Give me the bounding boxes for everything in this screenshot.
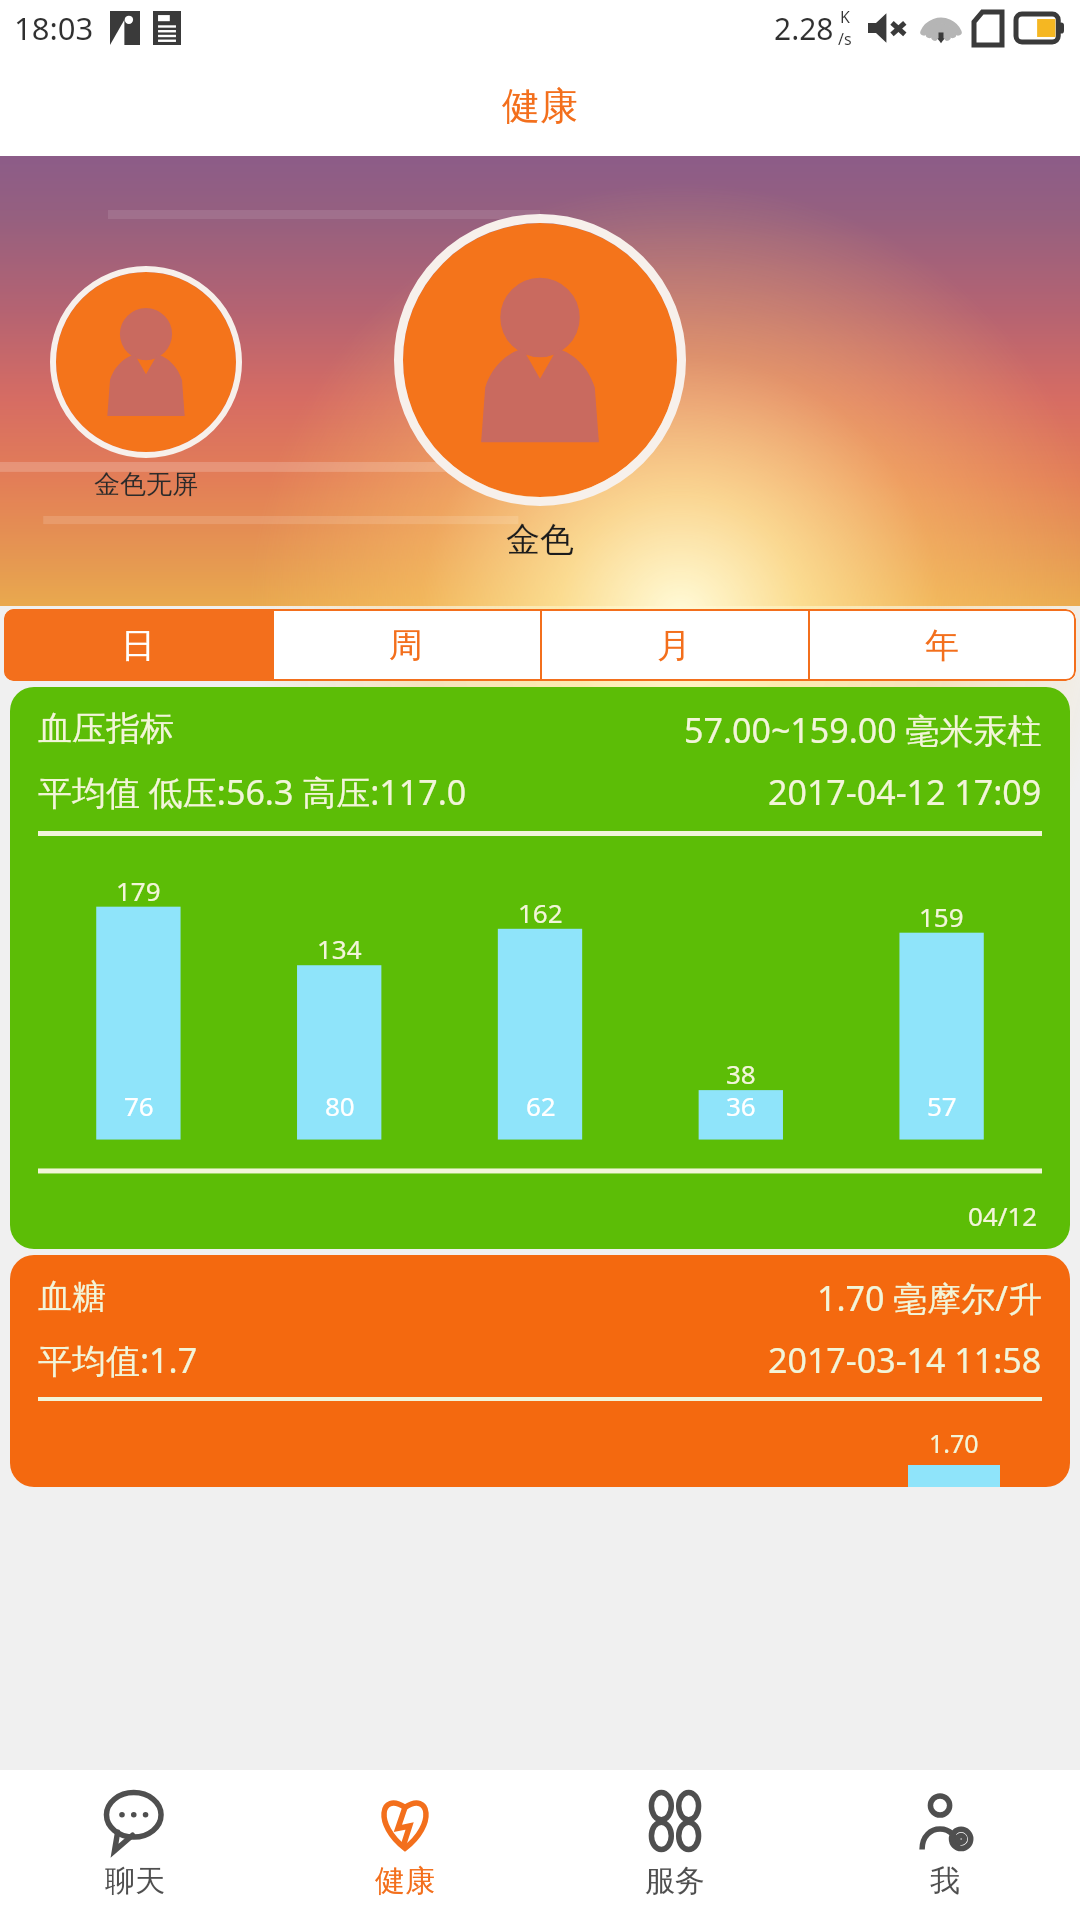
button[interactable]: 健康 [270, 1770, 540, 1920]
staticText: 血压指标 [38, 707, 174, 750]
button[interactable]: 月 [540, 609, 808, 681]
staticText: 162 [518, 895, 563, 930]
other: User avatar [56, 272, 236, 452]
staticText: 80 [325, 1088, 355, 1123]
other: User avatar [403, 223, 677, 497]
staticText: 平均值:1.7 [38, 1337, 198, 1383]
staticText: K [840, 6, 850, 28]
button[interactable]: 周 [272, 609, 540, 681]
button[interactable]: 日 [4, 609, 272, 681]
staticText: 血糖 [38, 1275, 106, 1318]
staticText: 57.00~159.00 毫米汞柱 [684, 707, 1042, 753]
staticText: 服务 [645, 1862, 705, 1900]
staticText: 36 [726, 1088, 756, 1123]
staticText: 2.28 [774, 8, 834, 49]
button[interactable]: 年 [808, 609, 1076, 681]
staticText: 健康 [375, 1862, 435, 1900]
staticText: 1.70 [929, 1426, 979, 1460]
staticText: 1.70 毫摩尔/升 [817, 1275, 1042, 1321]
staticText: 健康 [502, 82, 578, 130]
button[interactable]: 血压指标 [10, 687, 1070, 1249]
staticText: 月 [657, 624, 691, 667]
staticText: 62 [526, 1088, 556, 1123]
staticText: 年 [925, 624, 959, 667]
button[interactable]: 聊天 [0, 1770, 270, 1920]
staticText: 76 [124, 1088, 154, 1123]
staticText: 周 [389, 624, 423, 667]
staticText: 2017-04-12 17:09 [768, 769, 1042, 815]
staticText: 金色 [506, 518, 574, 561]
button[interactable]: 血糖 [10, 1255, 1070, 1487]
staticText: 57 [927, 1088, 957, 1123]
button[interactable]: 我 [810, 1770, 1080, 1920]
staticText: 159 [919, 899, 964, 934]
staticText: 金色无屏 [94, 468, 198, 501]
staticText: 平均值 低压:56.3 高压:117.0 [38, 769, 467, 815]
button[interactable]: User avatar [394, 214, 686, 561]
staticText: 18:03 [14, 7, 94, 49]
staticText: 179 [116, 873, 161, 908]
staticText: 我 [930, 1862, 960, 1900]
staticText: 38 [726, 1056, 756, 1091]
button[interactable]: 服务 [540, 1770, 810, 1920]
staticText: 日 [121, 624, 155, 667]
staticText: 134 [317, 931, 362, 966]
staticText: 2017-03-14 11:58 [768, 1337, 1042, 1383]
button[interactable]: User avatar [50, 266, 242, 501]
staticText: /s [838, 28, 852, 50]
staticText: 聊天 [105, 1862, 165, 1900]
staticText: 04/12 [968, 1198, 1038, 1233]
